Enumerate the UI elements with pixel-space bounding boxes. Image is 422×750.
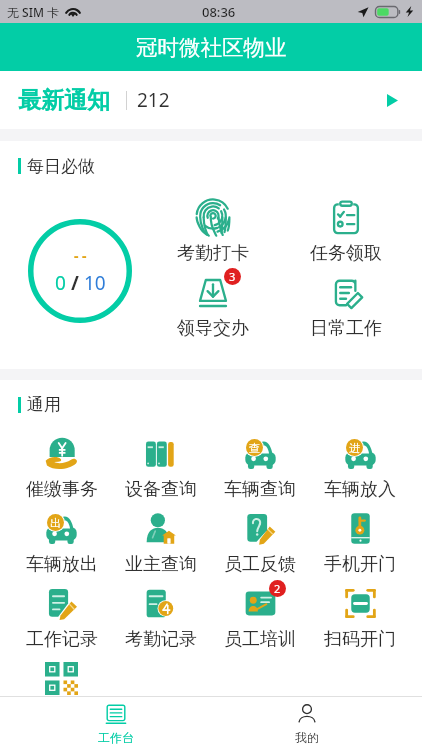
- staticText: /: [66, 270, 84, 296]
- button[interactable]: 出: [12, 504, 111, 576]
- staticText: 进: [349, 441, 360, 455]
- staticText: 任务领取: [310, 242, 382, 265]
- button[interactable]: 最新通知: [0, 71, 422, 129]
- staticText: 领导交办: [177, 317, 249, 340]
- staticText: 车辆放出: [26, 553, 98, 576]
- button[interactable]: 查: [210, 429, 310, 501]
- staticText: 工作记录: [26, 628, 98, 651]
- staticText: 考勤打卡: [177, 242, 249, 265]
- staticText: 无 SIM 卡: [7, 4, 60, 20]
- button[interactable]: 日常工作: [279, 266, 412, 340]
- staticText: 出: [50, 516, 61, 530]
- button[interactable]: 考勤记录: [111, 579, 210, 651]
- staticText: 0: [55, 270, 66, 296]
- staticText: 催缴事务: [26, 478, 98, 501]
- button[interactable]: 员工反馈: [210, 504, 310, 576]
- button[interactable]: 催缴事务: [12, 429, 111, 501]
- staticText: 设备查询: [125, 478, 197, 501]
- staticText: 2: [274, 581, 281, 596]
- staticText: 手机开门: [324, 553, 396, 576]
- staticText: 查: [249, 441, 260, 455]
- staticText: 考勤记录: [125, 628, 197, 651]
- button[interactable]: 进: [310, 429, 410, 501]
- staticText: 3: [229, 269, 236, 284]
- staticText: 员工培训: [224, 628, 296, 651]
- staticText: 08:36: [202, 3, 236, 21]
- button[interactable]: 手机开门: [310, 504, 410, 576]
- staticText: 212: [137, 87, 170, 113]
- button[interactable]: 任务领取: [279, 191, 412, 265]
- staticText: 员工反馈: [224, 553, 296, 576]
- staticText: 我的: [295, 730, 319, 745]
- staticText: 扫码开门: [324, 628, 396, 651]
- staticText: 业主查询: [125, 553, 197, 576]
- button[interactable]: 设备查询: [111, 429, 210, 501]
- staticText: 冠时微社区物业: [136, 34, 287, 61]
- staticText: 车辆查询: [224, 478, 296, 501]
- button[interactable]: 工作记录: [12, 579, 111, 651]
- staticText: 车辆放入: [324, 478, 396, 501]
- staticText: 每日必做: [27, 156, 95, 177]
- button[interactable]: 工作台: [20, 697, 211, 750]
- staticText: 通用: [27, 394, 61, 415]
- button[interactable]: 我的: [211, 697, 402, 750]
- button[interactable]: 扫码记录: [12, 654, 111, 696]
- other: More notifications: [382, 90, 402, 110]
- staticText: 工作台: [98, 730, 134, 745]
- button[interactable]: 考勤打卡: [146, 191, 279, 265]
- button[interactable]: 2: [210, 579, 310, 651]
- staticText: 10: [84, 270, 106, 296]
- button[interactable]: 3: [146, 266, 279, 340]
- staticText: - -: [74, 246, 87, 265]
- staticText: 日常工作: [310, 317, 382, 340]
- button[interactable]: 业主查询: [111, 504, 210, 576]
- button[interactable]: 扫码开门: [310, 579, 410, 651]
- staticText: 最新通知: [18, 86, 110, 115]
